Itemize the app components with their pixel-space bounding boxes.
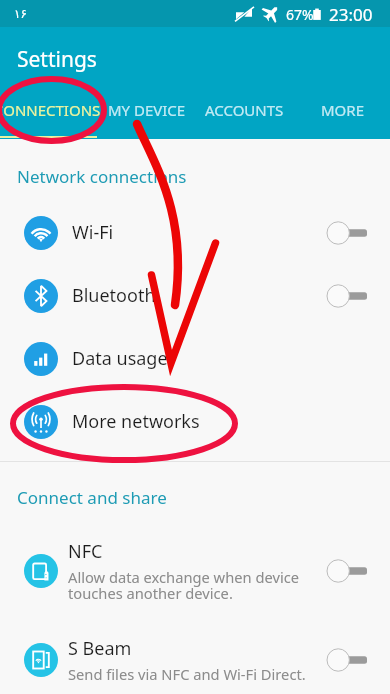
staticText: More networks [72, 409, 200, 434]
button[interactable]: Data usage [0, 327, 390, 390]
staticText: MY DEVICE [108, 100, 186, 120]
staticText: Data usage [72, 346, 168, 371]
staticText: ۱۶ [14, 7, 27, 21]
staticText: 67% [286, 5, 314, 24]
button[interactable]: ACCOUNTS [205, 100, 295, 140]
staticText: 23:00 [329, 3, 373, 26]
button[interactable]: NFC [0, 530, 390, 612]
button[interactable]: More networks [0, 390, 390, 453]
button[interactable]: S Beam [0, 626, 390, 694]
staticText: ACCOUNTS [205, 100, 284, 120]
staticText: NFC [68, 539, 103, 564]
staticText: Bluetooth [72, 283, 156, 308]
staticText: Wi-Fi [72, 220, 114, 245]
button[interactable]: Toggle Wi-Fi [326, 220, 372, 246]
button[interactable]: Toggle NFC [326, 558, 372, 584]
staticText: MORE [321, 100, 364, 120]
staticText: Settings [17, 45, 97, 74]
staticText: Allow data exchange when device touches … [68, 567, 300, 604]
button[interactable]: Toggle S Beam [326, 647, 372, 673]
staticText: Connect and share [17, 486, 167, 505]
button[interactable]: Wi-Fi [0, 201, 390, 264]
staticText: Network connections [17, 165, 187, 184]
button[interactable]: MY DEVICE [108, 100, 194, 140]
button[interactable]: Bluetooth [0, 264, 390, 327]
staticText: Send files via NFC and Wi-Fi Direct. [68, 664, 306, 684]
staticText: S Beam [68, 636, 132, 661]
button[interactable]: Toggle Bluetooth [326, 283, 372, 309]
button[interactable]: MORE [321, 100, 369, 140]
button[interactable]: CONNECTIONS [0, 100, 112, 140]
staticText: CONNECTIONS [0, 100, 101, 120]
